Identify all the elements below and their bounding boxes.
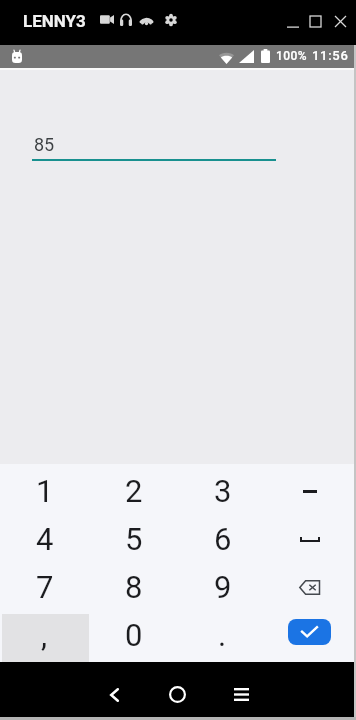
button[interactable]: 5: [89, 515, 178, 563]
button[interactable]: Home: [157, 674, 198, 715]
button[interactable]: Close: [329, 10, 352, 32]
button[interactable]: .: [178, 611, 267, 659]
staticText: 1: [36, 473, 54, 509]
staticText: 7: [36, 569, 54, 605]
button[interactable]: 9: [178, 563, 267, 611]
button[interactable]: 7: [0, 563, 89, 611]
button[interactable]: Backspace: [267, 563, 356, 611]
button[interactable]: 6: [178, 515, 267, 563]
staticText: 5: [125, 521, 143, 557]
button[interactable]: Minimize: [281, 11, 304, 33]
other: Audio: [120, 14, 132, 26]
staticText: 6: [214, 521, 232, 557]
staticText: ,: [41, 617, 48, 653]
staticText: 85: [34, 134, 55, 155]
other: Video: [100, 15, 114, 24]
button[interactable]: 0: [89, 611, 178, 659]
button[interactable]: Minus: [267, 467, 356, 515]
other: Settings: [165, 14, 177, 26]
staticText: 11:56: [312, 48, 349, 63]
other: Wifi: [138, 14, 155, 25]
staticText: 100%: [276, 49, 307, 63]
button[interactable]: 1: [0, 467, 89, 515]
staticText: 3: [214, 473, 232, 509]
staticText: 2: [125, 473, 143, 509]
staticText: 8: [125, 569, 143, 605]
button[interactable]: 3: [178, 467, 267, 515]
button[interactable]: Maximize: [304, 10, 327, 32]
button[interactable]: 2: [89, 467, 178, 515]
staticText: LENNY3: [23, 11, 86, 31]
button[interactable]: 8: [89, 563, 178, 611]
button[interactable]: Recents: [221, 674, 262, 715]
staticText: 4: [36, 521, 54, 557]
staticText: 9: [214, 569, 232, 605]
staticText: 0: [125, 617, 143, 653]
staticText: .: [218, 617, 227, 653]
button[interactable]: 4: [0, 515, 89, 563]
button[interactable]: Back: [93, 674, 134, 715]
button[interactable]: ,: [0, 611, 89, 659]
button[interactable]: Space: [267, 515, 356, 563]
button[interactable]: Enter: [267, 611, 356, 659]
